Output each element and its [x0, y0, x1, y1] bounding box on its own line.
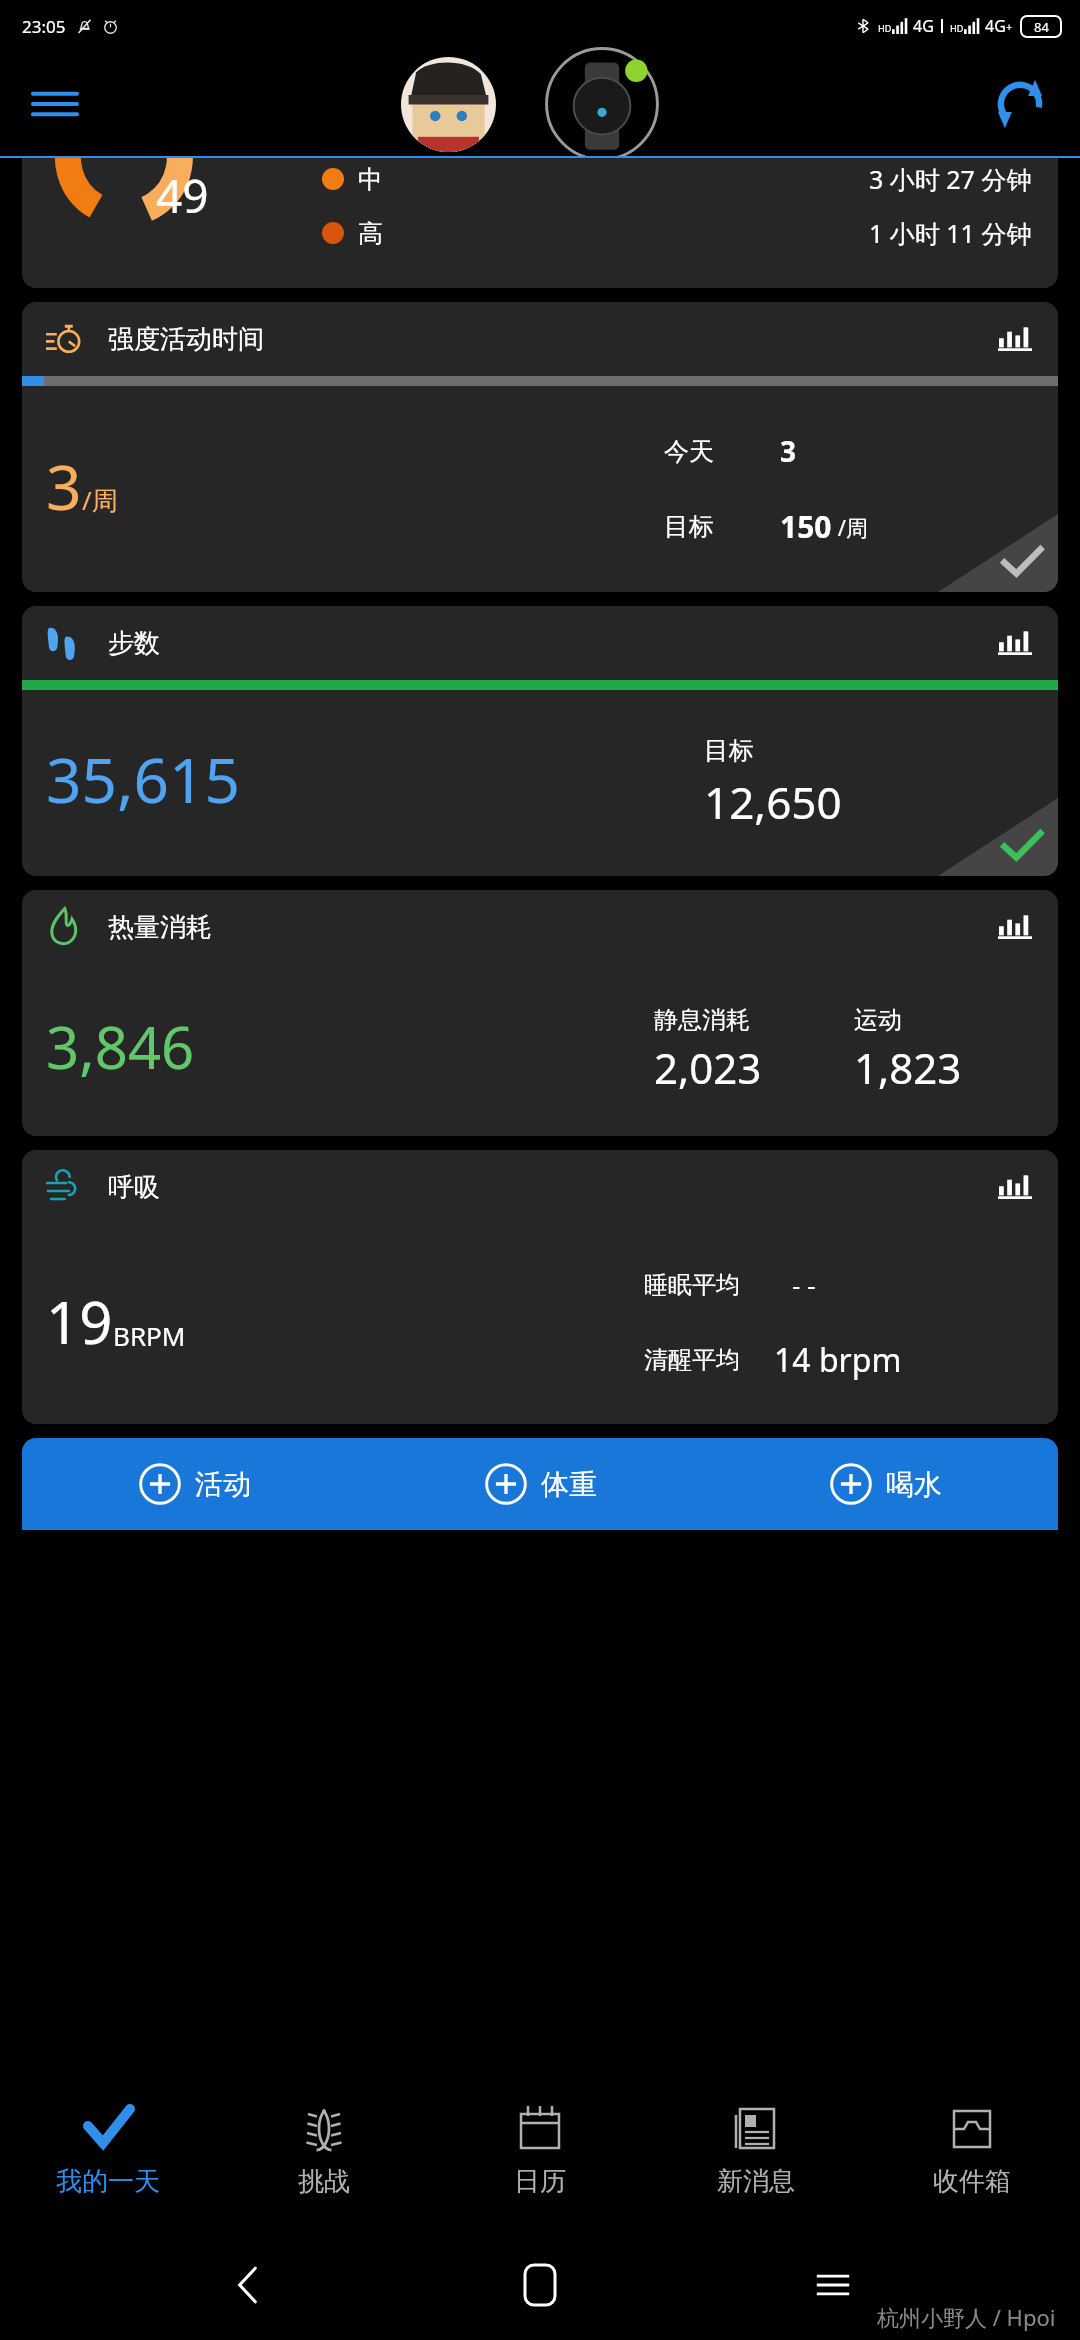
staticText: HD — [950, 22, 964, 34]
staticText: 收件箱 — [933, 2165, 1011, 2198]
staticText: 杭州小野人 / Hpoi — [877, 2302, 1056, 2332]
button[interactable]: Device — [536, 52, 668, 156]
staticText: 3 — [46, 444, 82, 528]
staticText: 喝水 — [886, 1467, 942, 1502]
staticText: 呼吸 — [108, 1171, 160, 1204]
button[interactable]: Home — [495, 2240, 585, 2330]
staticText: 目标 — [704, 735, 754, 766]
button[interactable]: 49 — [22, 158, 1058, 288]
staticText: 日历 — [514, 2165, 566, 2198]
button[interactable]: Chart — [994, 622, 1036, 664]
staticText: 4G — [985, 15, 1006, 37]
staticText: 35,615 — [46, 737, 240, 821]
staticText: 1,823 — [854, 1039, 962, 1096]
staticText: 清醒平均 — [644, 1345, 740, 1375]
staticText: 2,023 — [654, 1039, 762, 1096]
staticText: 23:05 — [22, 15, 66, 38]
staticText: 3 小时 27 分钟 — [869, 162, 1032, 196]
staticText: 挑战 — [298, 2165, 350, 2198]
staticText: 静息消耗 — [654, 1005, 750, 1035]
staticText: BRPM — [113, 1318, 186, 1353]
button[interactable]: Recents — [788, 2240, 878, 2330]
button[interactable]: Sync — [960, 52, 1080, 156]
button[interactable]: 日历 — [432, 2070, 648, 2230]
button[interactable]: 收件箱 — [864, 2070, 1080, 2230]
button[interactable]: 强度活动时间 — [22, 302, 1058, 592]
button[interactable]: 呼吸 — [22, 1150, 1058, 1424]
staticText: 目标 — [664, 511, 714, 542]
staticText: 3,846 — [46, 1007, 195, 1086]
button[interactable]: Menu — [0, 52, 110, 156]
staticText: 我的一天 — [56, 2165, 160, 2198]
button[interactable]: 热量消耗 — [22, 890, 1058, 1136]
staticText: 强度活动时间 — [108, 323, 264, 356]
button[interactable]: Profile — [401, 57, 496, 152]
button[interactable]: Back — [203, 2240, 293, 2330]
staticText: 体重 — [541, 1467, 597, 1502]
button[interactable]: 喝水 — [713, 1438, 1058, 1530]
staticText: 19 — [46, 1282, 113, 1361]
button[interactable]: 挑战 — [216, 2070, 432, 2230]
staticText: 运动 — [854, 1005, 902, 1035]
button[interactable]: Chart — [994, 906, 1036, 948]
staticText: 步数 — [108, 627, 160, 660]
button[interactable]: 新消息 — [648, 2070, 864, 2230]
button[interactable]: 步数 — [22, 606, 1058, 876]
staticText: 12,650 — [704, 772, 842, 832]
staticText: 4G — [913, 15, 934, 37]
staticText: 150 — [780, 506, 832, 547]
staticText: 84 — [1034, 18, 1049, 36]
button[interactable]: 体重 — [368, 1438, 713, 1530]
staticText: /周 — [832, 512, 868, 542]
staticText: 49 — [156, 164, 209, 227]
staticText: 3 — [780, 432, 797, 470]
staticText: /周 — [82, 482, 118, 518]
staticText: 中 — [358, 164, 383, 195]
staticText: + — [1006, 19, 1013, 34]
staticText: 高 — [358, 218, 383, 249]
button[interactable]: 我的一天 — [0, 2070, 216, 2230]
staticText: 今天 — [664, 436, 714, 467]
staticText: 1 小时 11 分钟 — [869, 216, 1032, 250]
staticText: 活动 — [195, 1467, 251, 1502]
button[interactable]: 活动 — [22, 1438, 368, 1530]
button[interactable]: Chart — [994, 1166, 1036, 1208]
button[interactable]: Chart — [994, 318, 1036, 360]
staticText: 14 brpm — [774, 1338, 902, 1382]
staticText: HD — [878, 22, 892, 34]
staticText: 睡眠平均 — [644, 1270, 740, 1300]
staticText: - - — [792, 1267, 816, 1302]
staticText: 新消息 — [717, 2165, 795, 2198]
staticText: 热量消耗 — [108, 911, 212, 944]
